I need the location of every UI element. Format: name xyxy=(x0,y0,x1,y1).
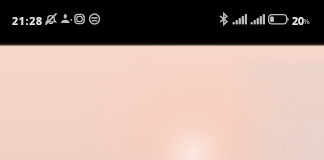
staticText: 21:28 xyxy=(12,14,43,28)
staticText: % xyxy=(303,16,310,26)
staticText: 20 xyxy=(292,14,305,28)
